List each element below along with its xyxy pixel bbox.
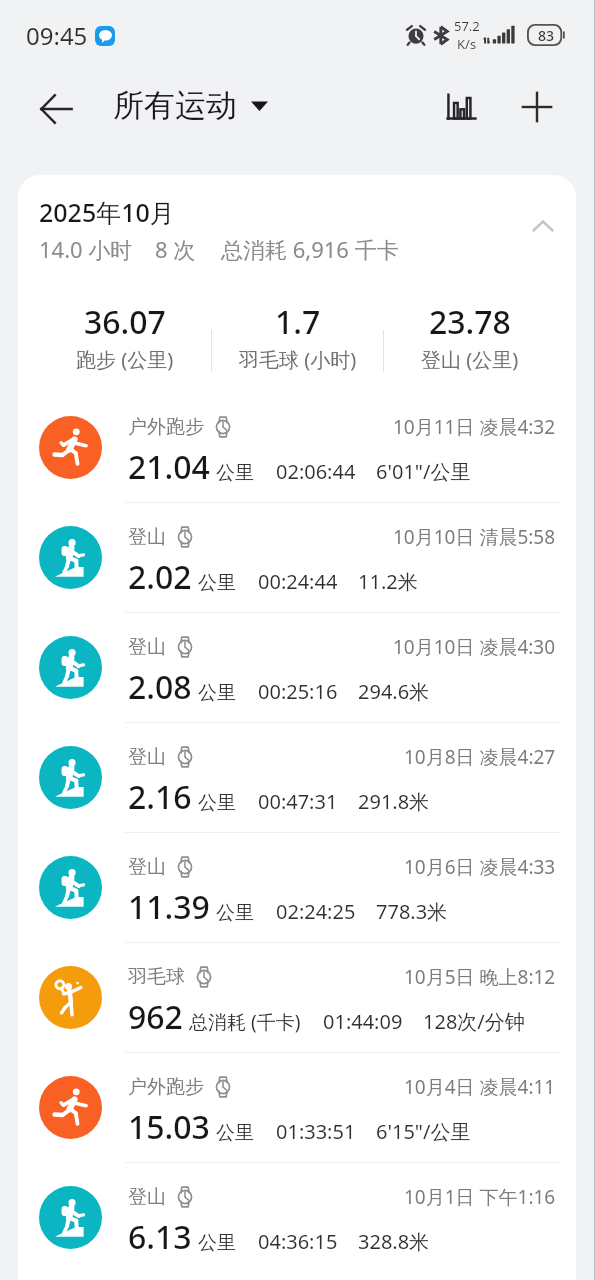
staticText: 10月5日 晚上8:12 [404, 964, 556, 990]
staticText: 23.78 [429, 300, 511, 344]
staticText: 总消耗 (千卡) [189, 1009, 301, 1035]
staticText: 1.7 [275, 300, 321, 344]
staticText: 962 [128, 995, 183, 1039]
staticText: 8 次 [155, 234, 196, 264]
staticText: 登山 [128, 525, 166, 549]
staticText: 291.8米 [358, 788, 430, 815]
staticText: 10月6日 凌晨4:33 [404, 854, 556, 880]
staticText: 6.13 [128, 1215, 192, 1259]
staticText: 36.07 [84, 300, 166, 344]
button[interactable]: Add [509, 79, 565, 135]
staticText: 15.03 [128, 1105, 210, 1149]
staticText: 00:47:31 [258, 788, 338, 815]
staticText: 2025年10月 [39, 195, 175, 229]
staticText: 10月4日 凌晨4:11 [404, 1074, 556, 1100]
staticText: 294.6米 [358, 678, 430, 705]
staticText: 01:44:09 [323, 1008, 403, 1035]
staticText: 6'01"/公里 [376, 458, 471, 485]
staticText: 羽毛球 [128, 965, 185, 989]
staticText: 登山 [128, 745, 166, 769]
staticText: 04:36:15 [258, 1228, 338, 1255]
button[interactable]: 登山 [18, 612, 576, 722]
button[interactable]: Statistics [433, 79, 489, 135]
staticText: 10月10日 凌晨4:30 [393, 634, 556, 660]
staticText: 公里 [198, 791, 236, 815]
button[interactable]: 户外跑步 [18, 392, 576, 502]
staticText: 登山 [128, 855, 166, 879]
staticText: 02:06:44 [276, 458, 356, 485]
staticText: 02:24:25 [276, 898, 356, 925]
staticText: 公里 [216, 461, 254, 485]
button[interactable]: 所有运动 [113, 86, 268, 125]
staticText: 57.2 [454, 17, 480, 35]
staticText: 公里 [216, 901, 254, 925]
staticText: K/s [457, 35, 477, 53]
staticText: 10月1日 下午1:16 [404, 1184, 556, 1210]
staticText: 户外跑步 [128, 415, 204, 439]
staticText: 登山 [128, 635, 166, 659]
staticText: 公里 [198, 1231, 236, 1255]
staticText: 所有运动 [113, 86, 237, 125]
staticText: 登山 (公里) [421, 346, 519, 373]
button[interactable]: Collapse [519, 202, 567, 250]
staticText: 2.16 [128, 775, 192, 819]
staticText: 2.02 [128, 555, 192, 599]
button[interactable]: 登山 [18, 722, 576, 832]
staticText: 00:24:44 [258, 568, 338, 595]
staticText: 328.8米 [358, 1228, 430, 1255]
staticText: 14.0 小时 [39, 234, 133, 264]
staticText: 10月10日 清晨5:58 [393, 524, 556, 550]
button[interactable]: 登山 [18, 832, 576, 942]
staticText: 128次/分钟 [423, 1008, 525, 1035]
button[interactable]: 登山 [18, 502, 576, 612]
button[interactable]: Back [28, 81, 84, 137]
staticText: 公里 [216, 1121, 254, 1145]
staticText: 11.2米 [358, 568, 418, 595]
staticText: 6'15"/公里 [376, 1118, 471, 1145]
staticText: 公里 [198, 571, 236, 595]
staticText: 21.04 [128, 445, 210, 489]
staticText: 羽毛球 (小时) [239, 346, 357, 373]
button[interactable]: 登山 [18, 1162, 576, 1272]
button[interactable]: 户外跑步 [18, 1052, 576, 1162]
staticText: 10月11日 凌晨4:32 [393, 414, 556, 440]
staticText: 10月8日 凌晨4:27 [404, 744, 556, 770]
staticText: 778.3米 [376, 898, 448, 925]
staticText: 总消耗 6,916 千卡 [221, 234, 399, 264]
staticText: 户外跑步 [128, 1075, 204, 1099]
staticText: 登山 [128, 1185, 166, 1209]
button[interactable]: 羽毛球 [18, 942, 576, 1052]
staticText: 11.39 [128, 885, 210, 929]
staticText: 跑步 (公里) [76, 346, 174, 373]
staticText: 83 [538, 26, 555, 45]
staticText: 2.08 [128, 665, 192, 709]
staticText: 01:33:51 [276, 1118, 356, 1145]
staticText: 09:45 [26, 19, 88, 52]
staticText: 公里 [198, 681, 236, 705]
staticText: 00:25:16 [258, 678, 338, 705]
